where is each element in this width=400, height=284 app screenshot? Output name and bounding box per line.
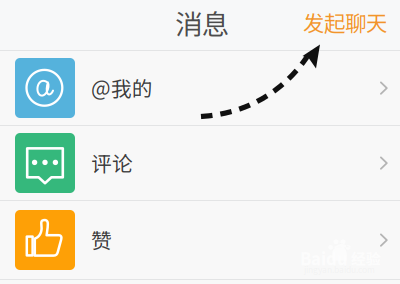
staticText: 赞 bbox=[91, 224, 112, 254]
button[interactable]: 评论 bbox=[0, 126, 400, 200]
staticText: @我的 bbox=[91, 72, 153, 102]
staticText: 评论 bbox=[91, 147, 133, 177]
button[interactable]: 发起聊天 bbox=[303, 6, 400, 44]
button[interactable]: @我的 bbox=[0, 51, 400, 125]
staticText: 发起聊天 bbox=[303, 7, 387, 37]
button[interactable]: 赞 bbox=[0, 201, 400, 279]
staticText: 消息 bbox=[175, 3, 229, 42]
